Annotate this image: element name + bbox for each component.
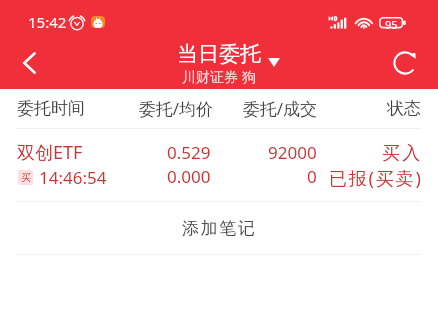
button[interactable]: Refresh [382, 41, 427, 85]
button[interactable]: 当日委托 [0, 41, 438, 87]
staticText: 14:46:54 [39, 166, 107, 189]
staticText: 已报(买卖) [329, 166, 423, 191]
staticText: 当日委托 [177, 41, 261, 67]
staticText: 0.529 [167, 141, 211, 164]
staticText: 0 [307, 165, 317, 188]
staticText: 委托/均价 [118, 97, 213, 120]
button[interactable]: 添加笔记 [0, 202, 438, 254]
staticText: 川财证券 狗 [182, 67, 256, 86]
staticText: 95 [385, 17, 398, 29]
staticText: 双创ETF [17, 140, 83, 165]
button[interactable]: Back [4, 41, 54, 85]
staticText: 买 [21, 171, 31, 184]
staticText: 添加笔记 [182, 218, 257, 239]
staticText: 状态 [317, 98, 421, 119]
staticText: 92000 [268, 141, 317, 164]
staticText: 0.000 [167, 165, 211, 188]
staticText: 委托/成交 [213, 97, 317, 120]
staticText: 买入 [382, 142, 423, 165]
staticText: 委托时间 [17, 98, 118, 119]
button[interactable]: 双创ETF [0, 129, 438, 202]
staticText: 15:42 [28, 12, 67, 32]
